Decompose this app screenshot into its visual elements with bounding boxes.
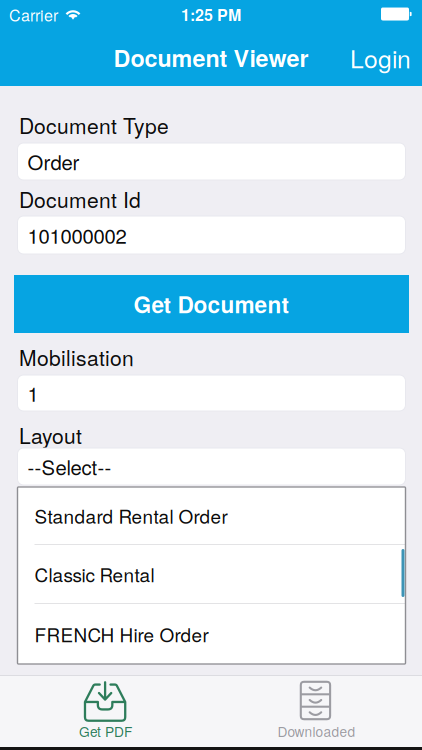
staticText: Carrier xyxy=(9,3,58,26)
staticText: Classic Rental xyxy=(34,560,154,587)
button[interactable]: Classic Rental xyxy=(17,545,405,603)
staticText: Document Type xyxy=(19,110,169,140)
staticText: Mobilisation xyxy=(19,342,134,372)
staticText: Get Document xyxy=(133,288,289,320)
button[interactable]: Standard Rental Order xyxy=(17,487,405,544)
staticText: 101000002 xyxy=(27,220,126,249)
staticText: 1:25 PM xyxy=(181,3,241,26)
staticText: Get PDF xyxy=(79,721,132,741)
staticText: Layout xyxy=(19,420,82,450)
staticText: Document Id xyxy=(19,184,141,214)
button[interactable]: FRENCH Hire Order xyxy=(17,604,405,664)
button[interactable]: Get Document xyxy=(14,275,409,333)
staticText: 1 xyxy=(27,378,38,407)
staticText: Document Viewer xyxy=(113,41,308,74)
staticText: Downloaded xyxy=(277,721,355,741)
button[interactable]: Downloaded xyxy=(211,675,422,747)
staticText: FRENCH Hire Order xyxy=(34,620,208,647)
staticText: --Select-- xyxy=(27,452,111,481)
staticText: Login xyxy=(350,40,411,75)
staticText: Order xyxy=(27,147,79,176)
button[interactable]: Login xyxy=(350,29,422,86)
staticText: Standard Rental Order xyxy=(34,502,227,529)
button[interactable]: Get PDF xyxy=(0,675,211,747)
